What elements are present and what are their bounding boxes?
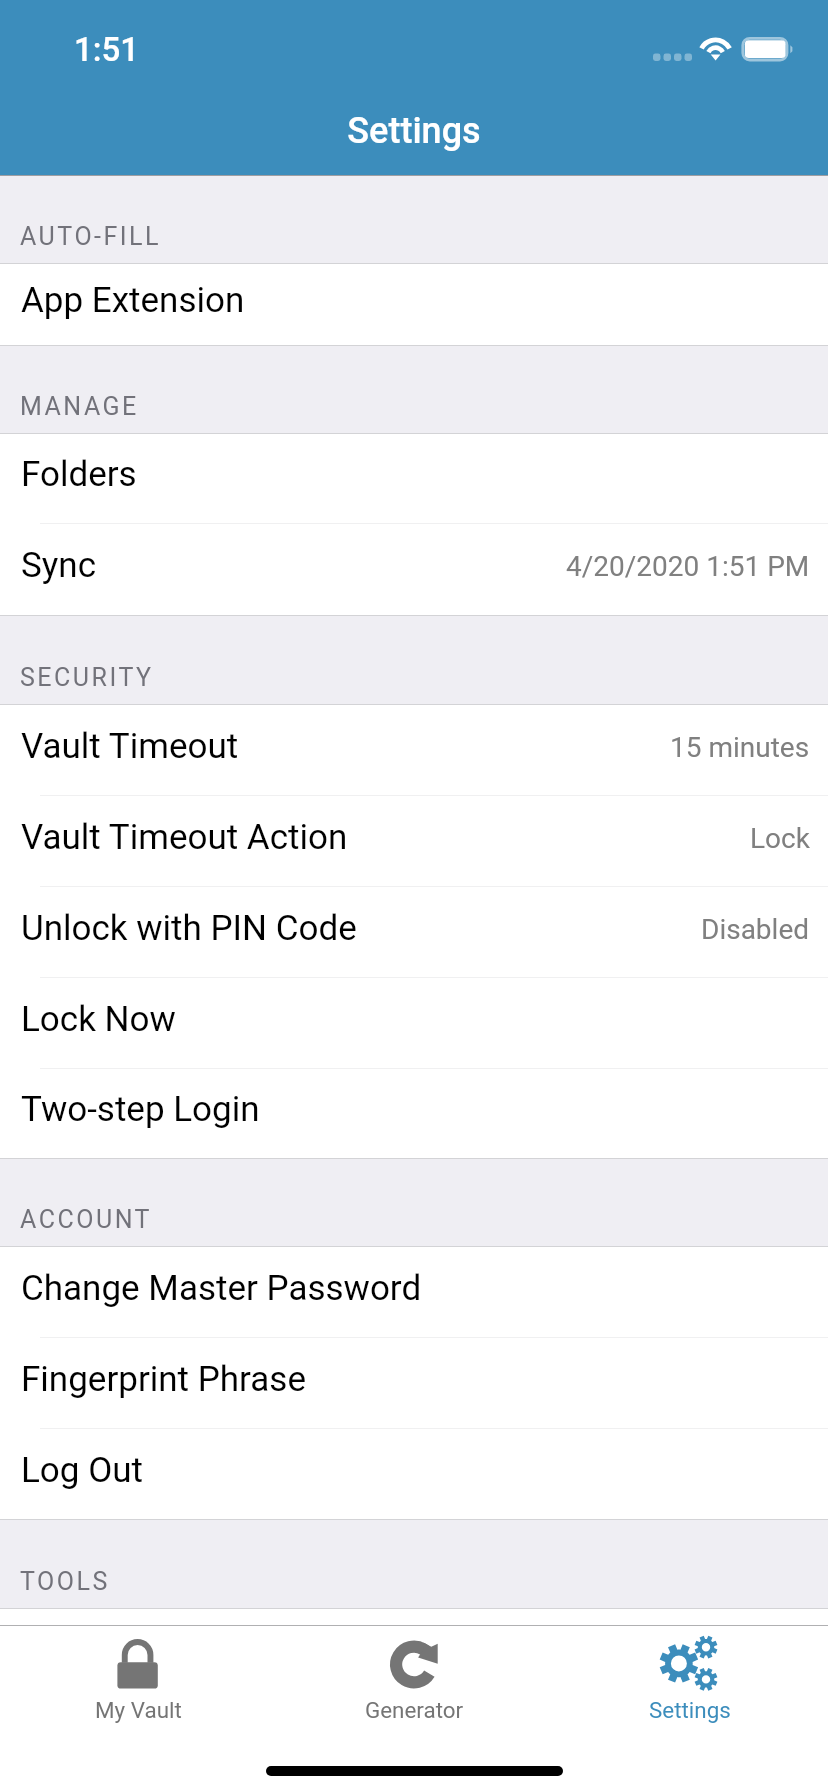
staticText: Settings bbox=[0, 110, 828, 152]
button[interactable]: Change Master Password bbox=[0, 1247, 828, 1337]
button[interactable]: Unlock with PIN Code bbox=[0, 887, 828, 977]
staticText: 15 minutes bbox=[670, 731, 810, 764]
button[interactable]: App Extension bbox=[0, 264, 828, 345]
staticText: TOOLS bbox=[20, 1567, 110, 1596]
staticText: Unlock with PIN Code bbox=[21, 908, 357, 949]
staticText: Two-step Login bbox=[21, 1089, 260, 1130]
staticText: Lock Now bbox=[21, 999, 176, 1040]
staticText: Folders bbox=[21, 454, 137, 495]
button[interactable]: Generator bbox=[276, 1625, 552, 1723]
button[interactable]: Vault Timeout bbox=[0, 705, 828, 795]
staticText: Vault Timeout Action bbox=[21, 817, 348, 858]
staticText: Log Out bbox=[21, 1450, 143, 1491]
staticText: Generator bbox=[365, 1697, 464, 1723]
staticText: Change Master Password bbox=[21, 1268, 422, 1309]
staticText: Sync bbox=[21, 545, 96, 586]
button[interactable]: Folders bbox=[0, 434, 828, 523]
staticText: Disabled bbox=[701, 913, 810, 946]
button[interactable]: Log Out bbox=[0, 1429, 828, 1519]
button[interactable]: Sync bbox=[0, 524, 828, 615]
staticText: MANAGE bbox=[20, 392, 139, 421]
staticText: Fingerprint Phrase bbox=[21, 1359, 306, 1400]
staticText: App Extension bbox=[21, 280, 245, 321]
staticText: AUTO-FILL bbox=[20, 222, 162, 251]
staticText: Vault Timeout bbox=[21, 726, 239, 767]
staticText: Lock bbox=[750, 822, 810, 855]
button[interactable]: Settings bbox=[552, 1625, 828, 1723]
staticText: Settings bbox=[649, 1697, 731, 1723]
button[interactable]: My Vault bbox=[0, 1625, 276, 1723]
staticText: ACCOUNT bbox=[20, 1205, 153, 1234]
staticText: 1:51 bbox=[74, 30, 140, 69]
staticText: SECURITY bbox=[20, 663, 154, 692]
button[interactable]: Two-step Login bbox=[0, 1069, 828, 1158]
button[interactable]: Lock Now bbox=[0, 978, 828, 1068]
staticText: 4/20/2020 1:51 PM bbox=[566, 550, 810, 583]
button[interactable]: Vault Timeout Action bbox=[0, 796, 828, 886]
button[interactable]: Fingerprint Phrase bbox=[0, 1338, 828, 1428]
staticText: My Vault bbox=[95, 1697, 182, 1723]
